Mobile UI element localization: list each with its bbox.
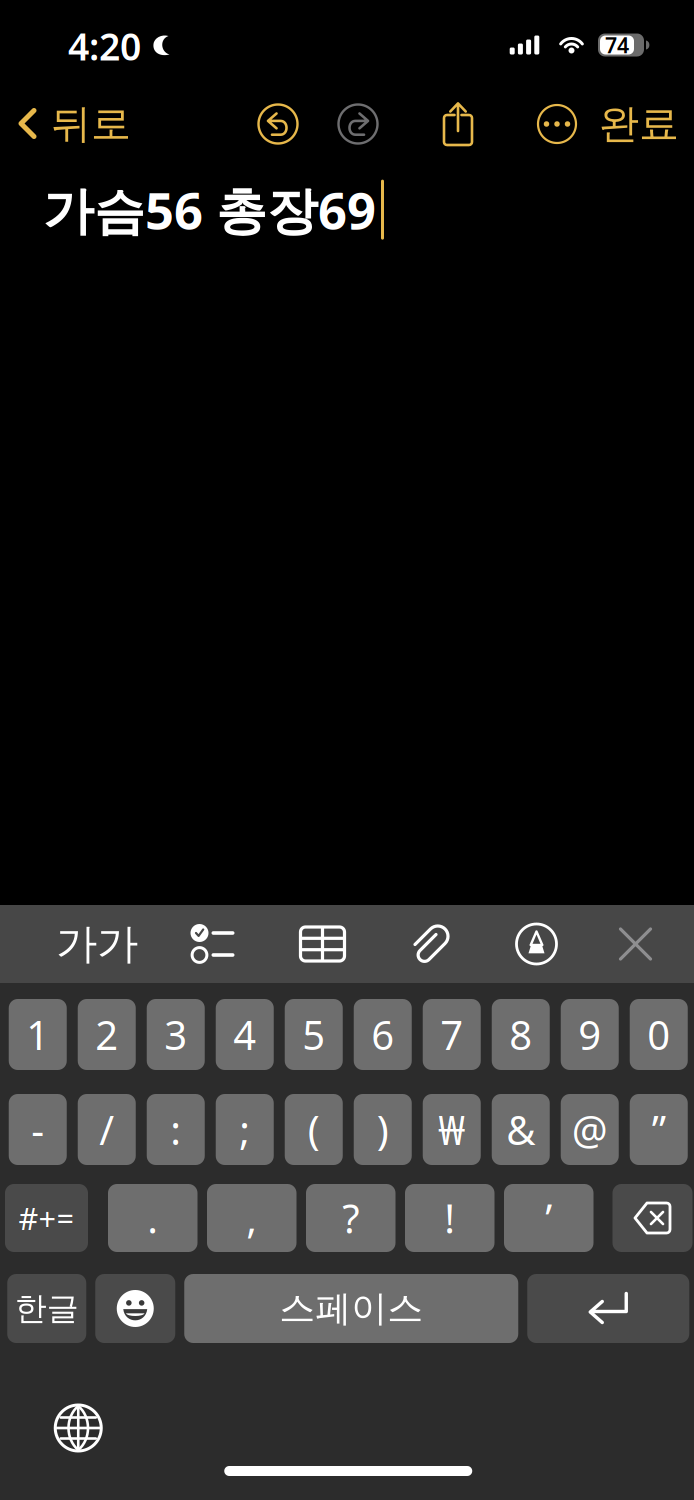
button[interactable]: ? bbox=[306, 1184, 395, 1252]
staticText: @ bbox=[572, 1103, 608, 1156]
button[interactable]: 4 bbox=[216, 999, 274, 1070]
staticText: , bbox=[246, 1191, 257, 1244]
staticText: 9 bbox=[578, 1008, 601, 1061]
button[interactable]: 더 보기 bbox=[524, 91, 590, 157]
staticText: 가가 bbox=[56, 919, 138, 969]
staticText: : bbox=[170, 1103, 181, 1156]
button[interactable]: , bbox=[207, 1184, 296, 1252]
button[interactable]: 2 bbox=[78, 999, 136, 1070]
staticText: 한글 bbox=[15, 1289, 79, 1328]
staticText: ₩ bbox=[438, 1103, 465, 1156]
button[interactable]: #+= bbox=[5, 1184, 88, 1252]
staticText: ’ bbox=[545, 1191, 552, 1244]
staticText: & bbox=[506, 1103, 535, 1156]
staticText: ? bbox=[342, 1191, 359, 1244]
button[interactable]: ! bbox=[405, 1184, 494, 1252]
button[interactable]: 뒤로 bbox=[18, 89, 168, 159]
button[interactable]: 줄바꿈 bbox=[527, 1274, 689, 1343]
button[interactable]: 1 bbox=[9, 999, 67, 1070]
staticText: ( bbox=[308, 1103, 320, 1156]
button[interactable]: ₩ bbox=[423, 1094, 481, 1165]
button[interactable]: 6 bbox=[354, 999, 412, 1070]
staticText: - bbox=[31, 1103, 44, 1156]
button[interactable]: 공유 bbox=[425, 91, 491, 157]
staticText: 4:20 bbox=[68, 21, 141, 71]
button[interactable]: 키보드 전환 bbox=[40, 1397, 116, 1459]
staticText: ; bbox=[239, 1103, 250, 1156]
button[interactable]: 완료 bbox=[591, 89, 687, 159]
staticText: 뒤로 bbox=[51, 99, 131, 148]
button[interactable]: ( bbox=[285, 1094, 343, 1165]
staticText: 8 bbox=[509, 1008, 532, 1061]
button[interactable]: . bbox=[108, 1184, 197, 1252]
button[interactable]: 서식 bbox=[40, 913, 154, 975]
button[interactable]: 0 bbox=[630, 999, 688, 1070]
button[interactable]: / bbox=[78, 1094, 136, 1165]
staticText: 1 bbox=[26, 1008, 49, 1061]
staticText: 스페이스 bbox=[279, 1286, 423, 1331]
staticText: 4 bbox=[233, 1008, 256, 1061]
staticText: ) bbox=[377, 1103, 389, 1156]
staticText: ! bbox=[444, 1191, 455, 1244]
button[interactable]: 8 bbox=[492, 999, 550, 1070]
button[interactable]: 스페이스 bbox=[184, 1274, 518, 1343]
button[interactable]: 7 bbox=[423, 999, 481, 1070]
button[interactable]: ) bbox=[354, 1094, 412, 1165]
button[interactable]: ’ bbox=[504, 1184, 593, 1252]
button[interactable]: ” bbox=[630, 1094, 688, 1165]
button[interactable]: 마크업 bbox=[486, 913, 587, 975]
staticText: 3 bbox=[164, 1008, 187, 1061]
button[interactable]: - bbox=[9, 1094, 67, 1165]
button[interactable]: 9 bbox=[561, 999, 619, 1070]
button[interactable]: 체크리스트 bbox=[154, 913, 268, 975]
button[interactable]: : bbox=[147, 1094, 205, 1165]
staticText: 0 bbox=[647, 1008, 670, 1061]
staticText: 완료 bbox=[599, 99, 679, 148]
staticText: 6 bbox=[371, 1008, 394, 1061]
button[interactable]: @ bbox=[561, 1094, 619, 1165]
button[interactable]: 표 bbox=[268, 913, 377, 975]
button[interactable]: 실행 취소 bbox=[245, 91, 311, 157]
staticText: #+= bbox=[18, 1198, 74, 1238]
staticText: ” bbox=[652, 1103, 666, 1156]
button[interactable]: 5 bbox=[285, 999, 343, 1070]
staticText: 74 bbox=[605, 31, 629, 59]
button[interactable]: 3 bbox=[147, 999, 205, 1070]
staticText: 가슴56 총장69 bbox=[43, 176, 376, 243]
staticText: / bbox=[99, 1103, 114, 1156]
staticText: 2 bbox=[95, 1008, 118, 1061]
staticText: 7 bbox=[440, 1008, 463, 1061]
button[interactable]: 첨부 bbox=[377, 913, 486, 975]
button[interactable]: 다시 실행 bbox=[325, 91, 391, 157]
button[interactable]: & bbox=[492, 1094, 550, 1165]
staticText: 5 bbox=[302, 1008, 325, 1061]
button[interactable]: 이모티콘 bbox=[95, 1274, 175, 1343]
button[interactable]: 한글 bbox=[7, 1274, 86, 1343]
button[interactable]: 삭제 bbox=[612, 1184, 692, 1252]
button[interactable]: 닫기 bbox=[587, 913, 684, 975]
button[interactable]: ; bbox=[216, 1094, 274, 1165]
staticText: . bbox=[147, 1191, 158, 1244]
